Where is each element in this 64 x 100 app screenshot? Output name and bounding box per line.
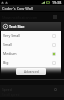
button[interactable]: Advanced xyxy=(16,68,46,75)
button[interactable]: Big xyxy=(1,58,61,67)
staticText: Speed xyxy=(2,87,12,92)
button[interactable]: Medium xyxy=(1,49,61,58)
button[interactable]: Show notification icon xyxy=(0,13,64,21)
staticText: Advanced xyxy=(24,70,39,74)
staticText: Very Small xyxy=(3,33,21,38)
staticText: Text Size xyxy=(9,24,25,29)
staticText: Big xyxy=(3,60,9,65)
staticText: 19:38 xyxy=(52,0,62,5)
button[interactable]: Very Small xyxy=(1,31,61,40)
button[interactable]: Small xyxy=(1,40,61,49)
staticText: Coder's Cow Wall xyxy=(2,6,34,11)
staticText: Medium xyxy=(3,51,17,56)
staticText: Small xyxy=(3,42,12,47)
